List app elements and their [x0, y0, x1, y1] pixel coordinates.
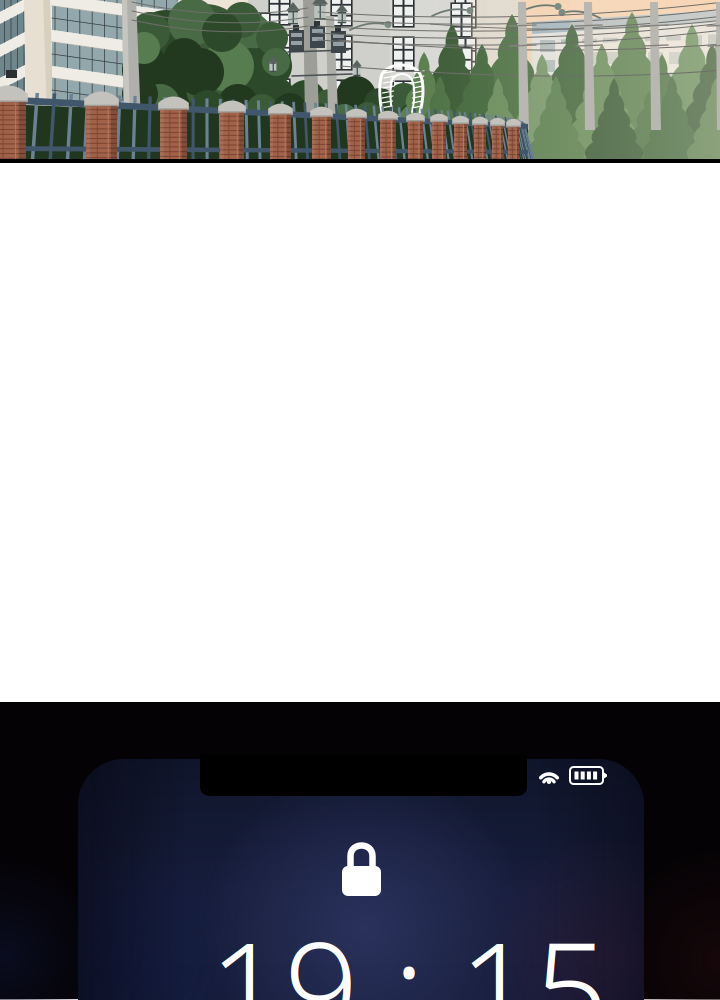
button[interactable]: Comic panel: city street seen over a bri… [0, 0, 720, 163]
button[interactable]: Comic panel: phone lock screen showing 1… [0, 702, 720, 1000]
staticText: 19 : 15 [209, 900, 609, 1000]
